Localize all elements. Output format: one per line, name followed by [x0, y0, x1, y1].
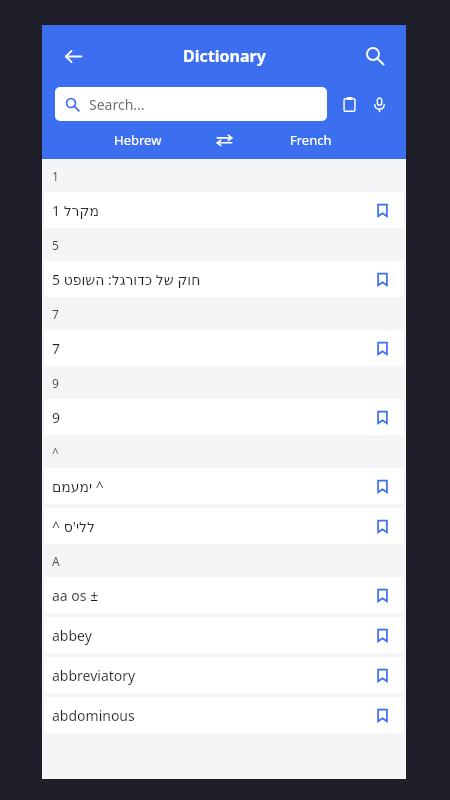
button[interactable]: Bookmark: [368, 512, 396, 540]
staticText: מקרל 1: [52, 201, 368, 220]
button[interactable]: Bookmark: [368, 661, 396, 689]
staticText: 5: [52, 237, 59, 253]
button[interactable]: 9: [44, 399, 404, 435]
button[interactable]: ימעמם ^: [44, 468, 404, 504]
staticText: Hebrew: [114, 131, 162, 149]
staticText: ^ ללי'ס: [52, 517, 368, 536]
button[interactable]: Bookmark: [368, 265, 396, 293]
staticText: French: [290, 131, 332, 149]
button[interactable]: 7: [44, 330, 404, 366]
staticText: abdominous: [52, 706, 368, 725]
button[interactable]: Bookmark: [368, 581, 396, 609]
button[interactable]: Bookmark: [368, 196, 396, 224]
staticText: abbreviatory: [52, 666, 368, 685]
staticText: חוק של כדורגל: השופט 5: [52, 270, 368, 289]
staticText: Dictionary: [183, 45, 266, 67]
button[interactable]: Bookmark: [368, 403, 396, 431]
button[interactable]: French: [241, 121, 380, 159]
staticText: 7: [52, 306, 59, 322]
staticText: 9: [52, 408, 368, 427]
button[interactable]: Paste from clipboard: [335, 90, 363, 118]
button[interactable]: abbreviatory: [44, 657, 404, 693]
button[interactable]: abdominous: [44, 697, 404, 733]
button[interactable]: Back: [56, 39, 90, 73]
button[interactable]: מקרל 1: [44, 192, 404, 228]
button[interactable]: Search...: [55, 87, 327, 121]
button[interactable]: aa os ±: [44, 577, 404, 613]
button[interactable]: Bookmark: [368, 472, 396, 500]
button[interactable]: Bookmark: [368, 334, 396, 362]
button[interactable]: ^ ללי'ס: [44, 508, 404, 544]
staticText: aa os ±: [52, 586, 368, 605]
button[interactable]: Swap languages: [207, 123, 241, 157]
button[interactable]: Bookmark: [368, 701, 396, 729]
staticText: Search...: [89, 95, 145, 114]
button[interactable]: Search: [358, 39, 392, 73]
staticText: 1: [52, 168, 59, 184]
staticText: 7: [52, 339, 368, 358]
staticText: ימעמם ^: [52, 477, 368, 496]
staticText: 9: [52, 375, 59, 391]
button[interactable]: abbey: [44, 617, 404, 653]
button[interactable]: חוק של כדורגל: השופט 5: [44, 261, 404, 297]
staticText: A: [52, 553, 60, 569]
button[interactable]: Hebrew: [68, 121, 207, 159]
staticText: ^: [52, 444, 59, 460]
button[interactable]: Voice search: [365, 90, 393, 118]
button[interactable]: Bookmark: [368, 621, 396, 649]
staticText: abbey: [52, 626, 368, 645]
